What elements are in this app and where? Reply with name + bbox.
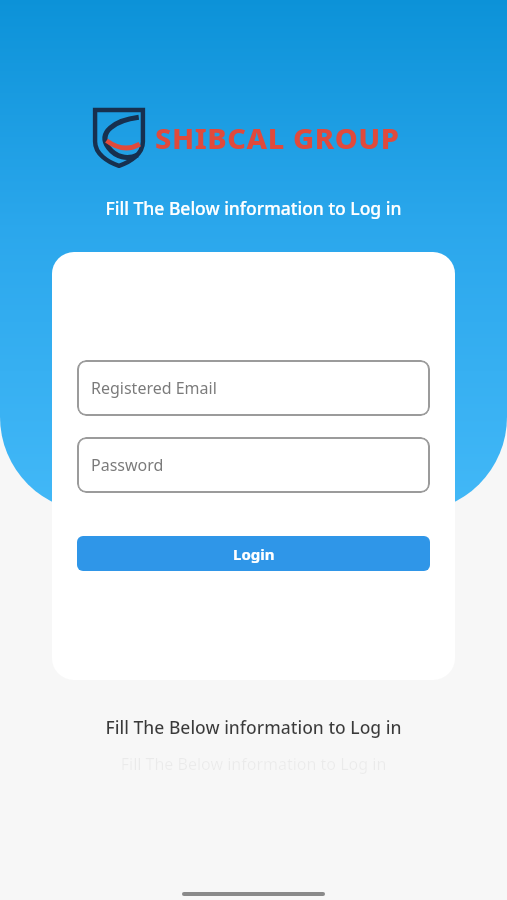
staticText: Registered Email — [91, 377, 217, 399]
staticText: Password — [91, 454, 164, 476]
staticText: SHIBCAL GROUP — [155, 118, 400, 157]
staticText: Fill The Below information to Log in — [0, 715, 507, 739]
button[interactable]: Registered Email — [77, 360, 430, 416]
staticText: Login — [233, 544, 275, 564]
button[interactable]: Login — [77, 536, 430, 571]
button[interactable]: Password — [77, 437, 430, 493]
other: Shibcal Group logo — [93, 107, 145, 167]
staticText: Fill The Below information to Log in — [0, 196, 507, 220]
